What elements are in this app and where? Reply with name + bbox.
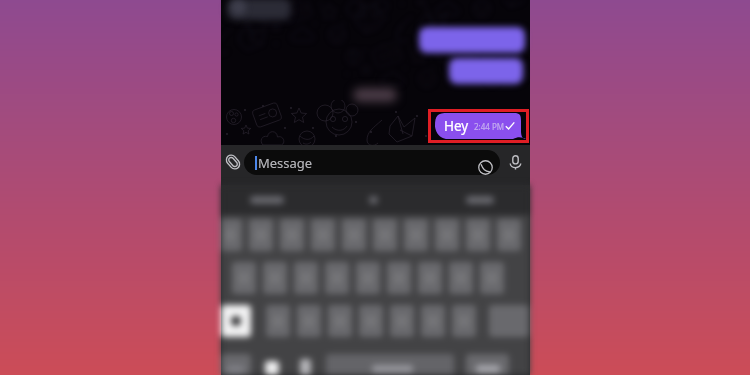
button[interactable]: Attach file xyxy=(223,152,243,172)
button[interactable]: Message xyxy=(244,150,500,175)
staticText: Message xyxy=(258,154,313,172)
button[interactable]: Stickers xyxy=(478,160,493,175)
button[interactable]: Record voice message xyxy=(507,154,524,171)
staticText: Hey xyxy=(444,117,469,135)
staticText: 2:44 PM xyxy=(474,121,505,132)
button[interactable]: Hey xyxy=(435,113,526,139)
